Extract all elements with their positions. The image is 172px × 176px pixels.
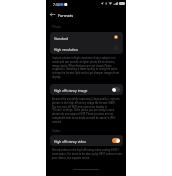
staticText: "Photos" settings. If the photo you are … — [52, 108, 115, 111]
staticText: image clarity. When features are not sho… — [52, 64, 122, 67]
button[interactable]: High efficiency video — [50, 135, 123, 146]
staticText: High efficiency video — [54, 139, 87, 143]
staticText: to keep the format light and to get shar… — [52, 71, 122, 74]
staticText: Photo — [52, 25, 61, 29]
staticText: Video — [52, 129, 61, 133]
staticText: mode and can provide a higher photo file… — [52, 60, 122, 63]
button[interactable]: Back — [48, 10, 56, 18]
staticText: photos do not support HEIF. Photo versio… — [52, 112, 114, 115]
staticText: compatible with more kinds and will be s… — [52, 116, 116, 119]
staticText: An extra file size while capturing 2 day… — [52, 97, 120, 100]
staticText: more space. For more to be about play HE… — [52, 152, 122, 155]
button[interactable]: Standard — [50, 32, 123, 43]
staticText: instead. — [52, 120, 62, 123]
button[interactable]: High resolution — [50, 43, 123, 54]
button[interactable]: High efficiency image — [50, 84, 123, 95]
staticText: your device, see support article. — [52, 156, 90, 159]
staticText: Record videos in the high efficiency vid… — [52, 148, 122, 151]
staticText: You can turn off HEIF and cannot be disp… — [52, 105, 107, 108]
staticText: High efficiency image — [54, 88, 88, 92]
staticText: High resolution — [54, 47, 78, 51]
staticText: cropped in, denoting a lower quality or … — [52, 67, 122, 70]
staticText: Formats — [58, 13, 73, 18]
staticText: photos in the High efficiency image file… — [52, 101, 116, 104]
staticText: Standard — [54, 36, 69, 40]
staticText: 7:34 — [53, 2, 60, 7]
staticText: Capture photos in High resolution if you… — [52, 56, 122, 59]
staticText: display. — [52, 75, 61, 78]
